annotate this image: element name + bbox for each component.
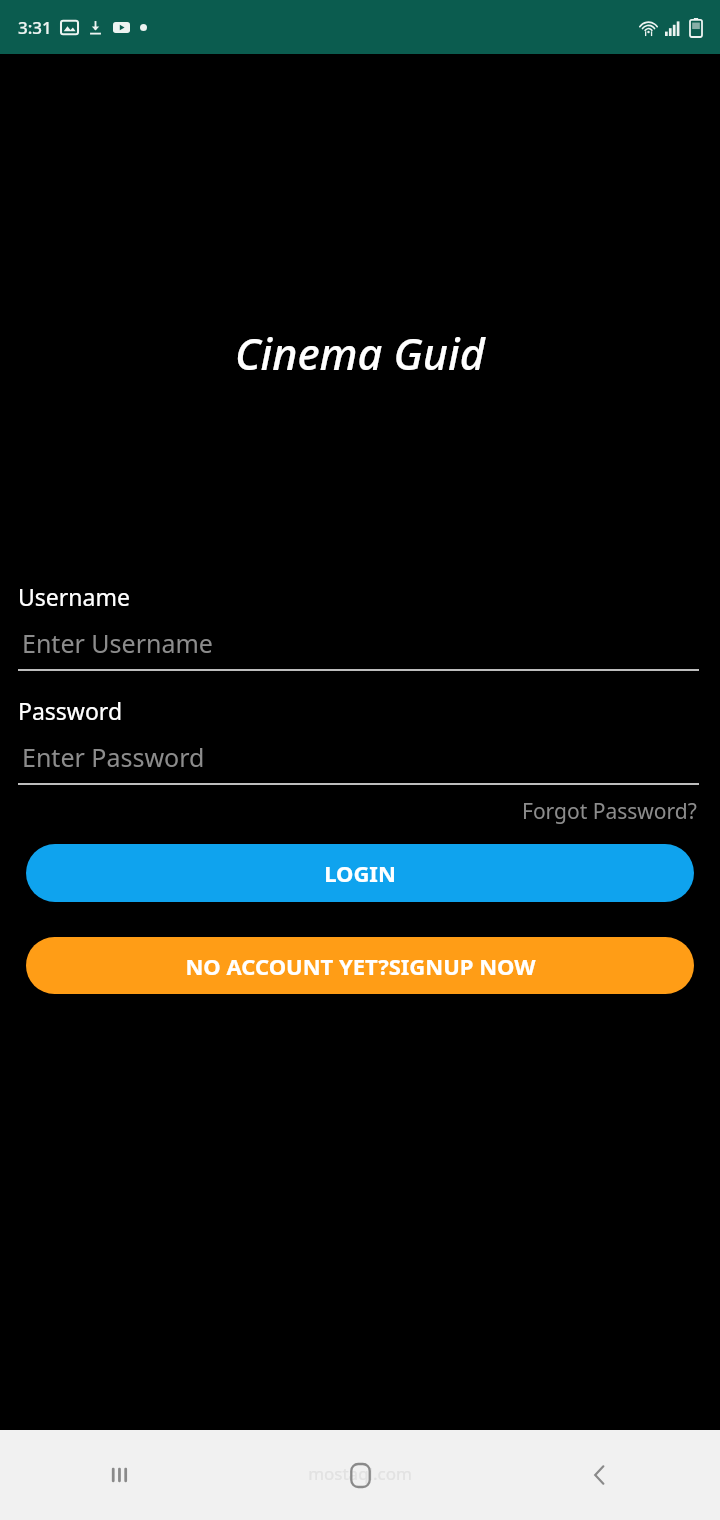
staticText: Forgot Password?: [522, 797, 697, 826]
button[interactable]: Enter Username: [18, 626, 699, 671]
staticText: Cinema Guid: [235, 324, 485, 383]
staticText: NO ACCOUNT YET?SIGNUP NOW: [185, 951, 536, 981]
button[interactable]: Forgot Password?: [520, 793, 699, 830]
button[interactable]: LOGIN: [26, 844, 694, 902]
staticText: 3:31: [18, 16, 52, 39]
staticText: Password: [18, 695, 123, 726]
staticText: mostaql.com: [308, 1462, 412, 1485]
button[interactable]: Recents: [92, 1447, 148, 1503]
button[interactable]: Enter Password: [18, 740, 699, 785]
staticText: Username: [18, 581, 130, 612]
staticText: Enter Username: [22, 626, 213, 660]
staticText: Enter Password: [22, 740, 205, 774]
button[interactable]: Back: [572, 1447, 628, 1503]
button[interactable]: NO ACCOUNT YET?SIGNUP NOW: [26, 937, 694, 994]
staticText: LOGIN: [324, 858, 396, 888]
button[interactable]: Home: [332, 1447, 388, 1503]
